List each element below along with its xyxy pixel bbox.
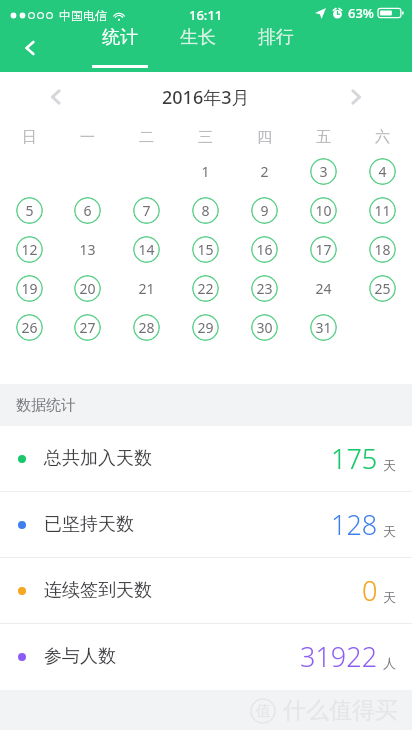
staticText: 10 [315,201,332,220]
staticText: 数据统计 [16,396,76,415]
staticText: 2 [260,162,269,181]
button[interactable]: Previous month [36,77,76,117]
staticText: 24 [315,279,332,298]
staticText: 25 [374,279,391,298]
staticText: 26 [21,318,38,337]
button[interactable]: 12 [16,236,43,263]
staticText: 31 [315,318,332,337]
staticText: 天 [383,523,396,539]
staticText: 21 [138,279,155,298]
button[interactable]: 生长 [170,26,226,65]
staticText: 20 [79,279,96,298]
button[interactable]: 21 [133,275,160,302]
staticText: 15 [197,240,214,259]
staticText: 排行 [258,26,294,49]
button[interactable]: 2 [251,158,278,185]
staticText: 四 [257,128,272,147]
staticText: 31922 [300,638,378,675]
button[interactable]: 参与人数 [0,624,412,689]
button[interactable]: 26 [16,314,43,341]
button[interactable]: 1 [192,158,219,185]
button[interactable]: 25 [369,275,396,302]
staticText: 统计 [102,26,138,49]
staticText: 一 [80,128,95,147]
button[interactable]: 9 [251,197,278,224]
staticText: 六 [375,128,390,147]
staticText: 五 [316,128,331,147]
staticText: 人 [383,655,396,671]
staticText: 7 [142,201,151,220]
staticText: 13 [79,240,96,259]
button[interactable]: 连续签到天数 [0,558,412,623]
staticText: 14 [138,240,155,259]
button[interactable]: 3 [310,158,337,185]
staticText: 175 [331,440,378,477]
staticText: 17 [315,240,332,259]
button[interactable]: Next month [336,77,376,117]
staticText: 日 [22,128,37,147]
staticText: 0 [362,572,378,609]
button[interactable]: 29 [192,314,219,341]
staticText: 5 [25,201,34,220]
button[interactable]: 22 [192,275,219,302]
button[interactable]: 23 [251,275,278,302]
button[interactable]: 24 [310,275,337,302]
staticText: 30 [256,318,273,337]
staticText: 9 [260,201,269,220]
staticText: 23 [256,279,273,298]
staticText: 二 [139,128,154,147]
button[interactable]: 30 [251,314,278,341]
button[interactable]: 16 [251,236,278,263]
staticText: 什么值得买 [283,696,398,725]
staticText: 22 [197,279,214,298]
button[interactable]: 14 [133,236,160,263]
button[interactable]: 已坚持天数 [0,492,412,557]
button[interactable]: 13 [74,236,101,263]
button[interactable]: 8 [192,197,219,224]
staticText: 29 [197,318,214,337]
staticText: 4 [378,162,387,181]
button[interactable]: 31 [310,314,337,341]
staticText: 28 [138,318,155,337]
staticText: 连续签到天数 [44,579,152,602]
button[interactable]: Back [10,28,52,68]
staticText: 3 [319,162,328,181]
staticText: 参与人数 [44,645,116,668]
staticText: 12 [21,240,38,259]
button[interactable]: 15 [192,236,219,263]
button[interactable]: 总共加入天数 [0,426,412,491]
staticText: 生长 [180,26,216,49]
button[interactable]: 20 [74,275,101,302]
staticText: 总共加入天数 [44,447,152,470]
staticText: 18 [374,240,391,259]
button[interactable]: 28 [133,314,160,341]
staticText: 2016年3月 [162,85,250,110]
staticText: 三 [198,128,213,147]
staticText: 值 [256,702,271,721]
staticText: 8 [201,201,210,220]
staticText: 16 [256,240,273,259]
staticText: 中国电信 [59,8,107,23]
staticText: 1 [201,162,210,181]
staticText: 11 [374,201,391,220]
button[interactable]: 统计 [92,26,148,68]
staticText: 6 [83,201,92,220]
button[interactable]: 6 [74,197,101,224]
staticText: 128 [331,506,378,543]
button[interactable]: 18 [369,236,396,263]
button[interactable]: 27 [74,314,101,341]
staticText: 27 [79,318,96,337]
staticText: 天 [383,457,396,473]
button[interactable]: 5 [16,197,43,224]
staticText: 19 [21,279,38,298]
button[interactable]: 11 [369,197,396,224]
button[interactable]: 17 [310,236,337,263]
button[interactable]: 19 [16,275,43,302]
button[interactable]: 4 [369,158,396,185]
staticText: 16:11 [189,6,223,24]
button[interactable]: 7 [133,197,160,224]
staticText: 天 [383,589,396,605]
button[interactable]: 排行 [248,26,304,65]
button[interactable]: 10 [310,197,337,224]
staticText: 63% [348,4,374,22]
